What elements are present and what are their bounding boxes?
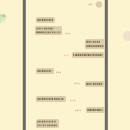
button[interactable]: See you soon xyxy=(85,81,105,87)
button[interactable]: Bring the documents with you xyxy=(36,96,66,102)
button[interactable]: Perfect xyxy=(36,68,54,74)
button[interactable]: Lets meet at the cafe near the park xyxy=(72,52,105,58)
button[interactable]: Thanks a lot have a nice day xyxy=(36,119,59,128)
button[interactable]: Are you free to go out this weekend xyxy=(35,26,62,35)
button[interactable]: Sure thing xyxy=(86,107,105,113)
button[interactable]: Hey there xyxy=(36,17,55,23)
button[interactable]: Yes I am free all day xyxy=(85,39,105,49)
